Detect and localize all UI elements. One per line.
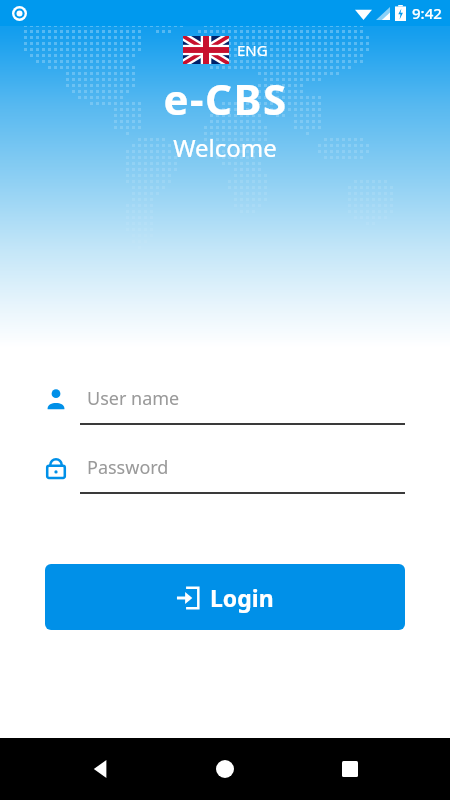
- staticText: Login: [210, 582, 274, 613]
- staticText: Password: [87, 455, 169, 480]
- button[interactable]: User name: [45, 386, 405, 425]
- button[interactable]: Recent apps: [326, 745, 374, 793]
- staticText: Welcome: [173, 131, 277, 164]
- staticText: 9:42: [412, 3, 442, 23]
- staticText: User name: [87, 386, 180, 411]
- other: Password: [45, 457, 67, 479]
- button[interactable]: Login: [45, 564, 405, 630]
- staticText: ENG: [237, 40, 268, 60]
- button[interactable]: Language English: [177, 34, 274, 66]
- other: User name: [45, 388, 67, 410]
- button[interactable]: Back: [77, 745, 125, 793]
- other: Language English: [183, 36, 229, 64]
- button[interactable]: Home: [201, 745, 249, 793]
- staticText: e-CBS: [163, 70, 288, 127]
- button[interactable]: Password: [45, 455, 405, 494]
